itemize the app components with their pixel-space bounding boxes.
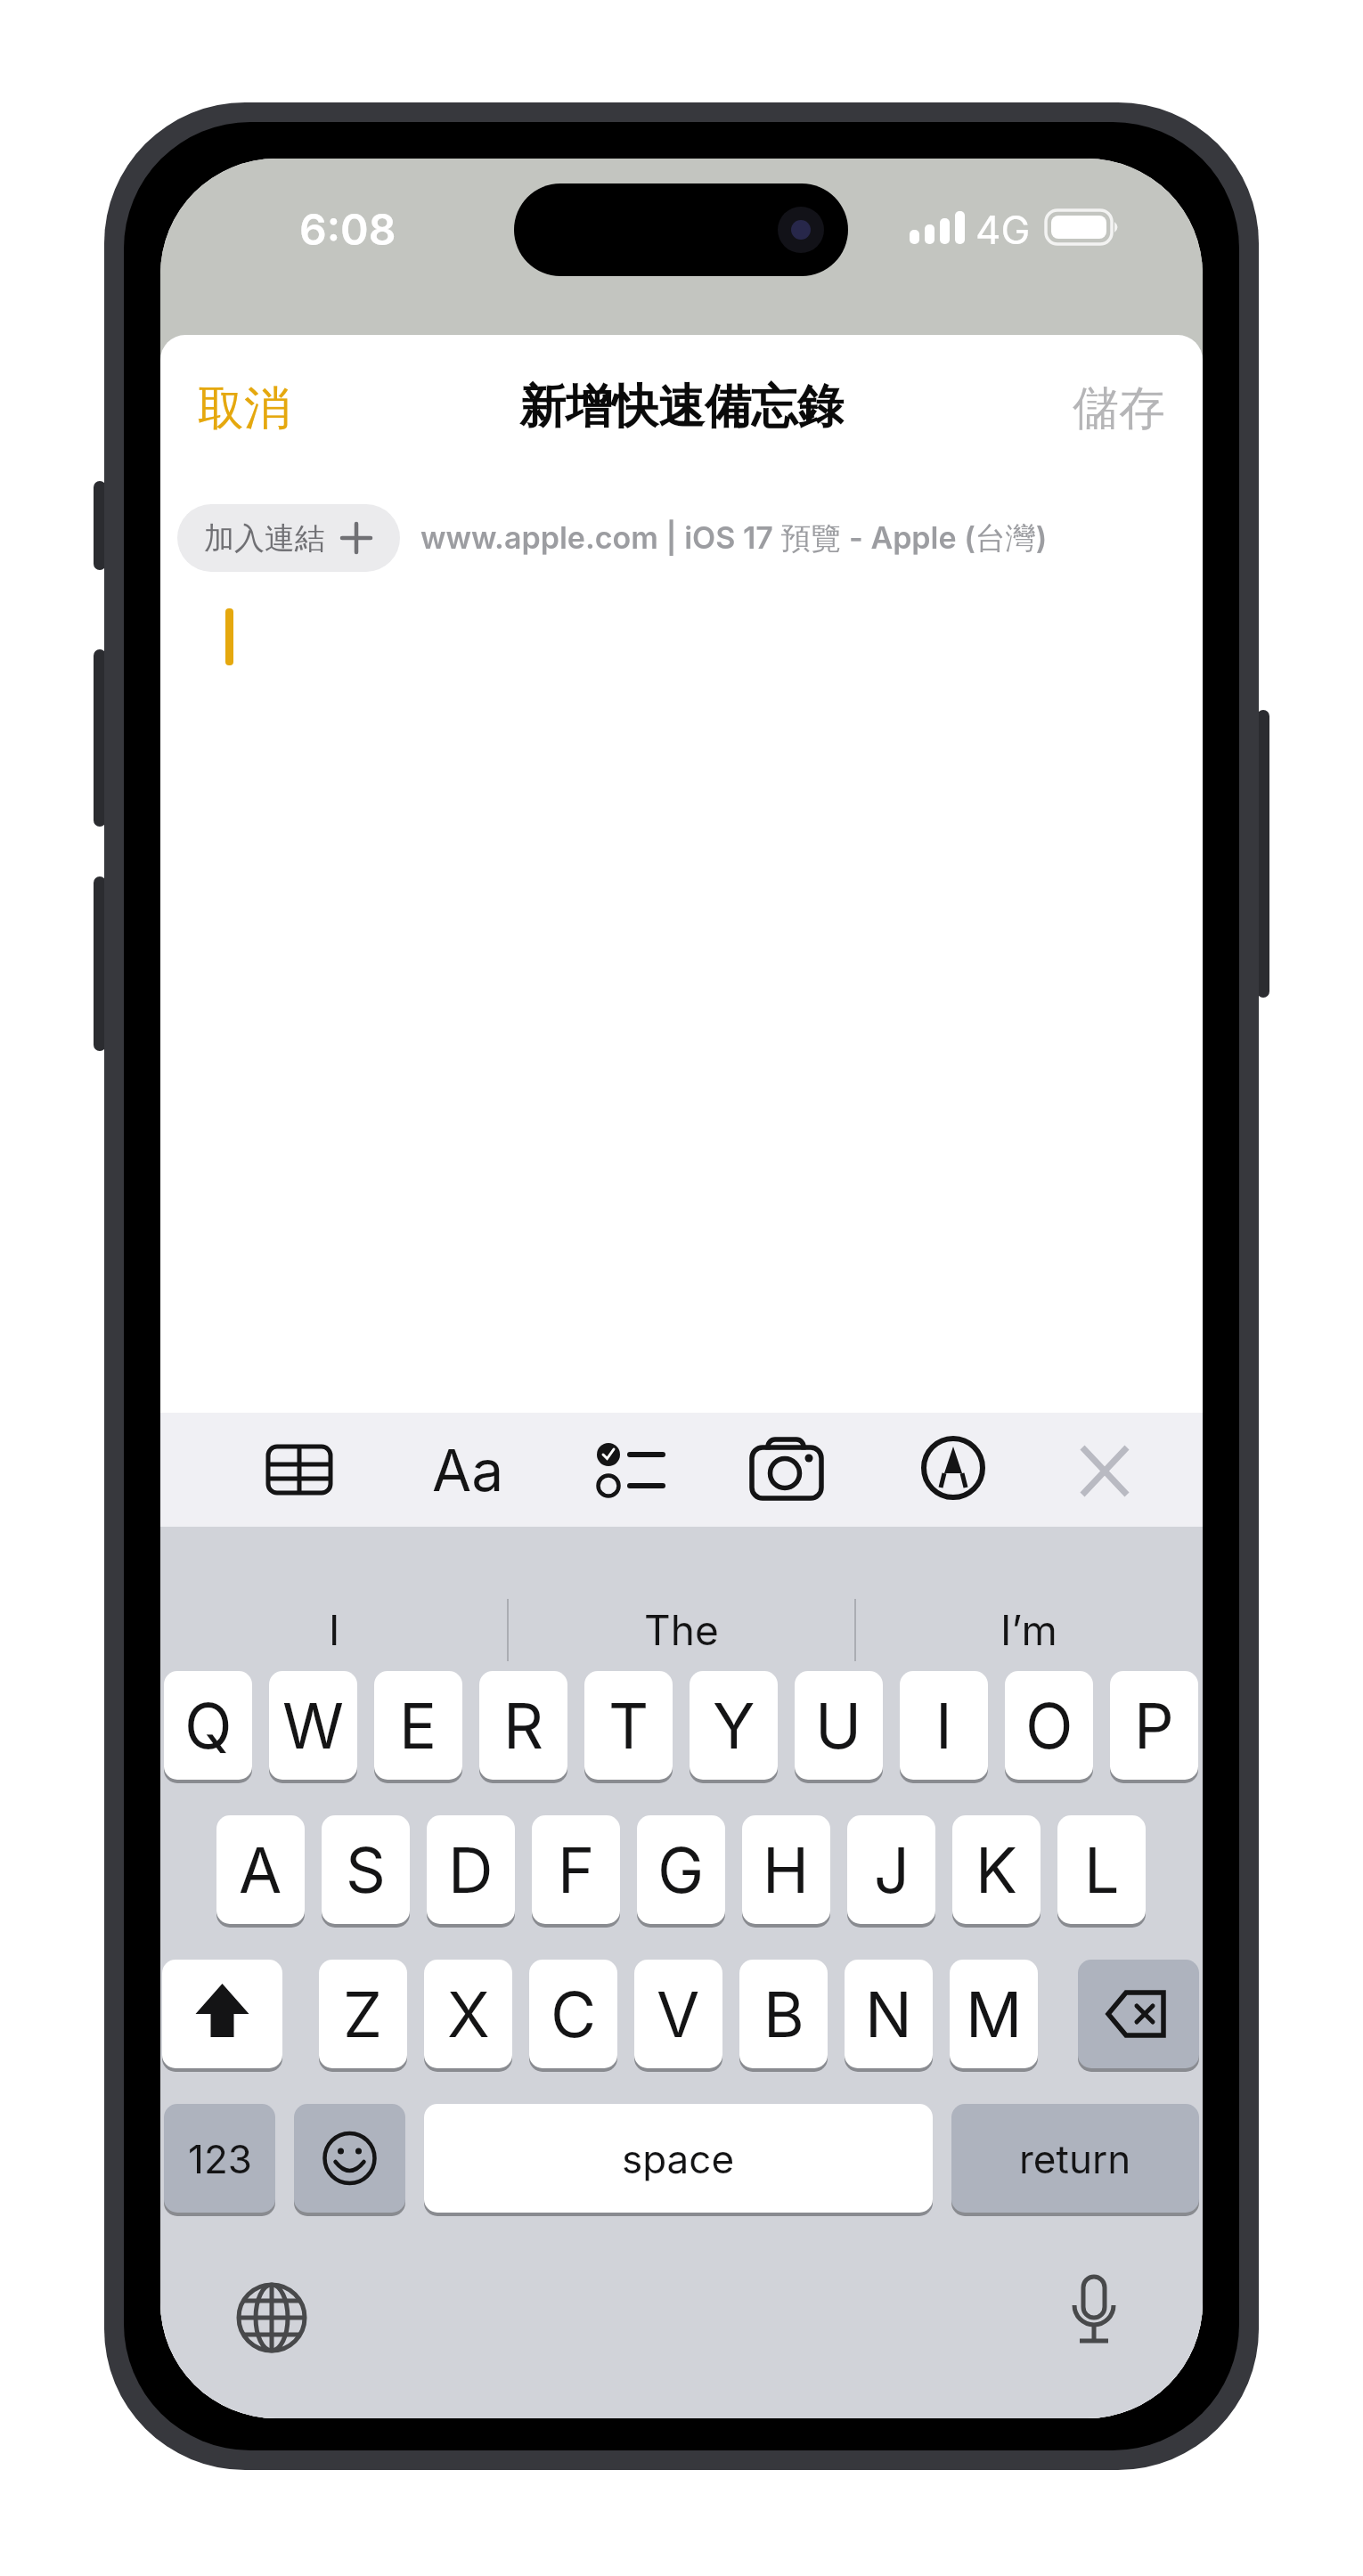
staticText: J xyxy=(874,1832,910,1908)
staticText: L xyxy=(1084,1832,1120,1908)
staticText: V xyxy=(657,1977,700,2052)
staticText: W xyxy=(282,1688,344,1764)
staticText: I’m xyxy=(1000,1605,1057,1655)
button[interactable] xyxy=(162,1960,282,2072)
button[interactable] xyxy=(266,1445,332,1495)
staticText: R xyxy=(503,1688,544,1764)
button[interactable]: U xyxy=(795,1671,883,1783)
button[interactable]: A xyxy=(216,1815,305,1928)
staticText: Q xyxy=(184,1688,233,1764)
button[interactable] xyxy=(236,2282,307,2353)
staticText: 加入連結 xyxy=(204,519,325,558)
button[interactable] xyxy=(747,1439,827,1500)
staticText: C xyxy=(551,1977,597,2052)
button[interactable]: The xyxy=(644,1605,719,1655)
staticText: A xyxy=(239,1832,282,1908)
button[interactable]: J xyxy=(847,1815,935,1928)
button[interactable]: E xyxy=(374,1671,462,1783)
staticText: F xyxy=(558,1832,595,1908)
button[interactable]: S xyxy=(322,1815,410,1928)
staticText: I xyxy=(329,1605,340,1655)
staticText: space xyxy=(622,2135,735,2182)
staticText: D xyxy=(448,1832,494,1908)
staticText: 新增快速備忘錄 xyxy=(519,378,844,436)
staticText: I xyxy=(935,1688,952,1764)
button[interactable]: P xyxy=(1110,1671,1198,1783)
button[interactable] xyxy=(294,2104,405,2216)
staticText: Y xyxy=(713,1688,755,1764)
button[interactable]: 123 xyxy=(164,2104,275,2216)
button[interactable]: C xyxy=(529,1960,617,2072)
staticText: 儲存 xyxy=(1073,379,1165,438)
button[interactable]: 加入連結 xyxy=(177,504,400,572)
staticText: 6:08 xyxy=(299,203,396,255)
staticText: X xyxy=(447,1977,490,2052)
button[interactable]: K xyxy=(952,1815,1041,1928)
staticText: 123 xyxy=(188,2135,252,2182)
staticText: 4G xyxy=(975,206,1031,253)
button[interactable]: F xyxy=(532,1815,620,1928)
button[interactable]: O xyxy=(1005,1671,1093,1783)
staticText: Aa xyxy=(432,1436,504,1504)
button[interactable]: V xyxy=(634,1960,722,2072)
staticText: S xyxy=(346,1832,386,1908)
button[interactable]: X xyxy=(424,1960,512,2072)
staticText: H xyxy=(763,1832,810,1908)
staticText: T xyxy=(608,1688,649,1764)
button[interactable]: Z xyxy=(319,1960,407,2072)
button[interactable]: T xyxy=(584,1671,673,1783)
button[interactable]: return xyxy=(951,2104,1199,2216)
button[interactable]: L xyxy=(1057,1815,1146,1928)
staticText: www.apple.com | iOS 17 預覽 - Apple (台灣) xyxy=(420,519,1048,558)
button[interactable]: I xyxy=(329,1605,340,1655)
button[interactable] xyxy=(921,1436,985,1500)
button[interactable]: Aa xyxy=(432,1436,504,1504)
staticText: U xyxy=(815,1688,862,1764)
staticText: The xyxy=(644,1605,719,1655)
staticText: B xyxy=(763,1977,804,2052)
staticText: O xyxy=(1025,1688,1073,1764)
button[interactable]: 儲存 xyxy=(1073,379,1165,438)
staticText: M xyxy=(966,1977,1023,2052)
staticText: Z xyxy=(343,1977,383,2052)
button[interactable]: space xyxy=(424,2104,933,2216)
button[interactable]: 取消 xyxy=(198,379,290,438)
button[interactable]: H xyxy=(742,1815,830,1928)
staticText: K xyxy=(975,1832,1018,1908)
button[interactable]: Q xyxy=(164,1671,252,1783)
staticText: E xyxy=(399,1688,437,1764)
button[interactable] xyxy=(1060,2275,1128,2360)
button[interactable]: G xyxy=(637,1815,725,1928)
button[interactable]: M xyxy=(950,1960,1038,2072)
button[interactable] xyxy=(595,1439,666,1500)
button[interactable]: N xyxy=(845,1960,933,2072)
button[interactable]: R xyxy=(479,1671,567,1783)
staticText: N xyxy=(865,1977,912,2052)
staticText: G xyxy=(657,1832,705,1908)
button[interactable] xyxy=(1078,1960,1199,2072)
button[interactable] xyxy=(1082,1447,1127,1495)
staticText: 取消 xyxy=(198,379,290,438)
button[interactable]: Y xyxy=(690,1671,778,1783)
button[interactable]: I xyxy=(900,1671,988,1783)
button[interactable]: D xyxy=(427,1815,515,1928)
staticText: return xyxy=(1019,2135,1131,2182)
button[interactable]: I’m xyxy=(1000,1605,1057,1655)
staticText: P xyxy=(1134,1688,1174,1764)
button[interactable]: B xyxy=(739,1960,828,2072)
button[interactable]: W xyxy=(269,1671,357,1783)
